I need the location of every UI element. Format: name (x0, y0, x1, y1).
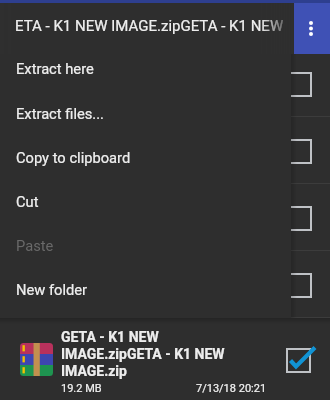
staticText: Paste (16, 237, 54, 254)
button[interactable]: GETA - K1 NEW IMAGE.zipGETA - K1 NEW IMA… (0, 318, 330, 400)
staticText: ETA - K1 NEW IMAGE.zipGETA - K1 NEW (15, 17, 284, 35)
staticText: Extract here (16, 60, 94, 77)
button[interactable]: More options (294, 3, 330, 54)
button[interactable] (0, 117, 330, 184)
staticText: GETA - K1 NEW IMAGE.zipGETA - K1 NEW IMA… (61, 329, 233, 380)
staticText: 7/13/18 20:21 (196, 382, 267, 395)
staticText: Extract files... (16, 105, 104, 122)
staticText: 19.2 MB (61, 382, 102, 395)
button[interactable]: Cut (0, 179, 291, 223)
button[interactable]: Copy to clipboard (0, 135, 291, 179)
button[interactable]: Extract files... (0, 91, 291, 135)
button[interactable] (0, 50, 330, 117)
button[interactable]: Paste (0, 223, 291, 267)
button[interactable]: Extract here (0, 46, 291, 90)
button[interactable]: New folder (0, 267, 291, 311)
button[interactable]: ETA - K1 NEW IMAGE.zipGETA - K1 NEW (0, 0, 330, 54)
staticText: New folder (16, 281, 88, 298)
staticText: Cut (16, 193, 39, 210)
button[interactable] (0, 184, 330, 251)
staticText: Copy to clipboard (16, 149, 131, 166)
button[interactable] (0, 251, 330, 318)
